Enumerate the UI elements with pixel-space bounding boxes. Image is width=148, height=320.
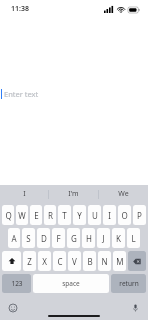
staticText: space xyxy=(62,279,80,288)
staticText: F xyxy=(56,233,61,244)
button[interactable]: E xyxy=(30,205,42,225)
button[interactable]: I xyxy=(0,185,48,203)
button[interactable]: Y xyxy=(73,205,86,225)
staticText: L xyxy=(131,233,136,244)
button[interactable]: D xyxy=(37,228,50,248)
staticText: Z xyxy=(27,256,32,267)
button[interactable]: N xyxy=(98,251,111,271)
staticText: I xyxy=(108,210,111,221)
staticText: 123 xyxy=(11,279,23,288)
staticText: R xyxy=(48,210,53,221)
button[interactable]: J xyxy=(97,228,110,248)
staticText: return xyxy=(119,279,139,288)
button[interactable]: M xyxy=(113,251,126,271)
staticText: 11:38 xyxy=(11,4,29,14)
staticText: T xyxy=(62,210,67,221)
staticText: B xyxy=(87,256,93,267)
staticText: O xyxy=(121,210,128,221)
button[interactable]: I'm xyxy=(49,185,98,203)
button[interactable]: V xyxy=(68,251,81,271)
button[interactable]: We xyxy=(99,185,148,203)
staticText: Enter text xyxy=(4,89,39,99)
staticText: Y xyxy=(77,210,82,221)
button[interactable]: C xyxy=(53,251,66,271)
button[interactable]: Shift xyxy=(2,251,21,271)
button[interactable]: X xyxy=(38,251,51,271)
button[interactable]: G xyxy=(67,228,80,248)
button[interactable]: T xyxy=(58,205,71,225)
button[interactable]: Z xyxy=(23,251,36,271)
button[interactable]: Emoji xyxy=(6,301,20,315)
button[interactable]: space xyxy=(33,274,109,293)
button[interactable]: O xyxy=(118,205,131,225)
button[interactable]: Backspace xyxy=(128,251,146,271)
staticText: E xyxy=(34,210,39,221)
button[interactable]: K xyxy=(112,228,125,248)
staticText: K xyxy=(116,233,121,244)
button[interactable]: B xyxy=(83,251,96,271)
staticText: A xyxy=(11,233,17,244)
button[interactable]: F xyxy=(52,228,65,248)
button[interactable]: I xyxy=(103,205,116,225)
button[interactable]: P xyxy=(133,205,146,225)
staticText: N xyxy=(101,256,108,267)
button[interactable]: R xyxy=(44,205,56,225)
button[interactable]: A xyxy=(8,228,20,248)
staticText: V xyxy=(72,256,77,267)
button[interactable]: return xyxy=(111,274,146,293)
staticText: C xyxy=(57,256,63,267)
button[interactable]: 123 xyxy=(2,274,31,293)
staticText: I xyxy=(23,189,26,199)
staticText: D xyxy=(41,233,47,244)
staticText: I'm xyxy=(68,189,79,199)
staticText: S xyxy=(26,233,31,244)
button[interactable]: L xyxy=(127,228,140,248)
button[interactable]: W xyxy=(16,205,28,225)
staticText: J xyxy=(102,233,105,244)
button[interactable]: Q xyxy=(2,205,14,225)
button[interactable]: U xyxy=(88,205,101,225)
button[interactable]: H xyxy=(82,228,95,248)
button[interactable]: Enter text xyxy=(0,86,148,102)
staticText: Q xyxy=(5,210,12,221)
staticText: M xyxy=(116,256,124,267)
staticText: G xyxy=(71,233,77,244)
button[interactable]: S xyxy=(22,228,35,248)
staticText: P xyxy=(137,210,142,221)
staticText: H xyxy=(86,233,92,244)
button[interactable]: Dictation xyxy=(128,301,142,315)
staticText: We xyxy=(118,189,129,199)
staticText: W xyxy=(18,210,26,221)
staticText: X xyxy=(42,256,47,267)
staticText: U xyxy=(92,210,98,221)
